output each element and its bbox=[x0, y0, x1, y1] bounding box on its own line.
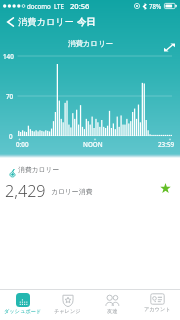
button[interactable]: アカウント bbox=[135, 290, 180, 320]
staticText: 消費カロリー bbox=[68, 39, 113, 48]
staticText: 今日 bbox=[77, 16, 96, 28]
staticText: 0:00 bbox=[16, 140, 29, 149]
button[interactable]: チャレンジ bbox=[45, 290, 90, 320]
staticText: docomo bbox=[27, 2, 51, 10]
staticText: 70 bbox=[6, 92, 14, 101]
staticText: NOON bbox=[83, 140, 103, 149]
staticText: 消費カロリー bbox=[18, 16, 74, 28]
button[interactable]: ダッシュボード bbox=[0, 290, 45, 320]
staticText: 消費カロリー bbox=[18, 165, 60, 174]
staticText: チャレンジ bbox=[54, 308, 81, 315]
staticText: 2,429 bbox=[5, 180, 46, 202]
staticText: 0 bbox=[9, 132, 13, 141]
button[interactable]: 友達 bbox=[90, 290, 135, 320]
staticText: ダッシュボード bbox=[4, 308, 42, 315]
button[interactable]: Back bbox=[2, 12, 18, 32]
staticText: 140 bbox=[3, 52, 14, 61]
staticText: 23:59 bbox=[158, 140, 175, 149]
staticText: 78% bbox=[149, 2, 162, 10]
staticText: アカウント bbox=[144, 306, 171, 313]
button[interactable]: Expand chart bbox=[162, 40, 176, 54]
staticText: 20:56 bbox=[70, 1, 90, 11]
staticText: LTE bbox=[54, 2, 64, 10]
staticText: カロリー消費 bbox=[51, 187, 93, 196]
staticText: 友達 bbox=[107, 308, 118, 315]
